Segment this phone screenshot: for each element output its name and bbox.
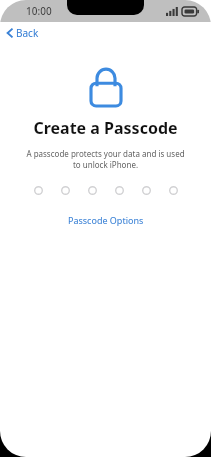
button[interactable]: Back xyxy=(0,23,47,43)
staticText: 10:00 xyxy=(26,4,52,18)
button[interactable]: Passcode Options xyxy=(58,211,154,229)
staticText: Passcode Options xyxy=(68,214,144,226)
staticText: A passcode protects your data and is use… xyxy=(12,148,199,170)
staticText: Back xyxy=(16,26,39,40)
staticText: Create a Passcode xyxy=(33,117,178,139)
